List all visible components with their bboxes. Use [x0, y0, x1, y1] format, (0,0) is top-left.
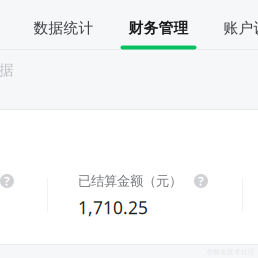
staticText: 账户设置 — [223, 19, 258, 37]
staticText: 1,710.25 — [78, 196, 148, 219]
staticText: @掘金技术社区 — [207, 247, 255, 256]
staticText: 已结算金额（元） — [78, 173, 182, 189]
staticText: 数据统计 — [33, 19, 93, 37]
staticText: 数据 — [0, 61, 14, 79]
button[interactable]: 数据统计 — [16, 0, 111, 49]
button[interactable]: 财务管理 — [111, 0, 206, 49]
button[interactable]: Help — [0, 174, 14, 188]
staticText: ? — [198, 173, 204, 189]
button[interactable]: Help — [194, 174, 208, 188]
staticText: ? — [4, 173, 10, 189]
staticText: 财务管理 — [128, 19, 188, 37]
button[interactable]: 账户设置 — [206, 0, 258, 49]
